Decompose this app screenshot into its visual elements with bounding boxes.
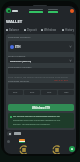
staticText: Deposit — [27, 28, 37, 32]
button[interactable]: Home — [6, 8, 11, 13]
button[interactable]: Support chat — [69, 146, 75, 152]
staticText: Balance — [9, 28, 19, 32]
staticText: 25% — [13, 91, 18, 94]
button[interactable]: Ethereum (ERC20) — [8, 57, 74, 63]
staticText: 50% — [30, 91, 35, 94]
staticText: Ethereum (ERC20) — [10, 59, 32, 62]
button[interactable]: Max — [58, 90, 74, 95]
button[interactable]: 50% — [24, 90, 40, 95]
button[interactable]: Withdraw ETH — [8, 104, 74, 111]
button[interactable]: Partner — [7, 131, 12, 136]
staticText: 75% — [47, 91, 52, 94]
staticText: Fill in carefully, the amount cannot be … — [8, 76, 68, 79]
staticText: Withdraw amount — [8, 79, 30, 82]
button[interactable]: ETH — [8, 41, 74, 52]
staticText: Min: 0.01 ETH — [54, 79, 69, 82]
button[interactable]: 75% — [41, 90, 57, 95]
staticText: Withdraw ETH — [32, 106, 51, 110]
staticText: Withdrawal Address — [8, 65, 32, 68]
button[interactable]: Deposit — [24, 27, 37, 33]
button[interactable]: History — [62, 27, 75, 33]
staticText: Withdraw Currency — [8, 35, 31, 38]
staticText: withdrawn once they have been reviewed b… — [13, 119, 61, 122]
staticText: WALLET — [6, 19, 23, 25]
staticText: Chain Network — [8, 54, 26, 57]
staticText: History — [65, 28, 75, 32]
button[interactable]: Award certificate — [7, 145, 40, 154]
button[interactable]: Award certificate 2 — [40, 145, 73, 154]
staticText: Max — [64, 91, 69, 94]
button[interactable]: 25% — [8, 90, 23, 95]
button[interactable]: Balance — [6, 27, 19, 33]
button[interactable]: Withdraw — [41, 27, 57, 33]
staticText: ETH — [15, 45, 21, 49]
button[interactable]: Promotions — [70, 9, 74, 13]
staticText: process. We appreciate your patience. — [13, 123, 51, 126]
staticText: For security reasons all withdrawal requ… — [13, 115, 60, 118]
staticText: Withdraw — [44, 28, 57, 32]
